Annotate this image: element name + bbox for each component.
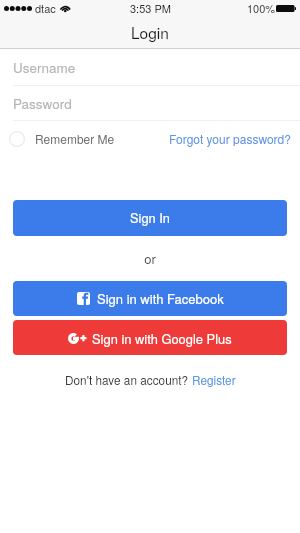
staticText: Sign in with Google Plus	[92, 329, 232, 347]
staticText: Remember Me	[35, 130, 115, 147]
button[interactable]: Sign in with Facebook	[13, 281, 287, 316]
staticText: Password	[13, 94, 72, 113]
button[interactable]: Sign In	[13, 200, 287, 236]
staticText: Don't have an account?	[65, 371, 192, 388]
staticText: Sign in with Facebook	[97, 289, 224, 308]
button[interactable]: Forgot your password?	[169, 130, 291, 147]
staticText: Login	[131, 21, 169, 43]
button[interactable]: Register	[192, 371, 236, 388]
staticText: or	[144, 249, 156, 264]
staticText: Sign In	[130, 208, 170, 226]
button[interactable]: Username	[0, 49, 300, 86]
staticText: 3:53 PM	[130, 0, 171, 16]
staticText: Username	[13, 58, 76, 77]
staticText: dtac	[35, 0, 56, 16]
button[interactable]: Sign in with Google Plus	[13, 320, 287, 355]
button[interactable]: Remember Me	[9, 130, 115, 147]
button[interactable]: Password	[0, 86, 300, 121]
staticText: 100%	[247, 0, 276, 16]
